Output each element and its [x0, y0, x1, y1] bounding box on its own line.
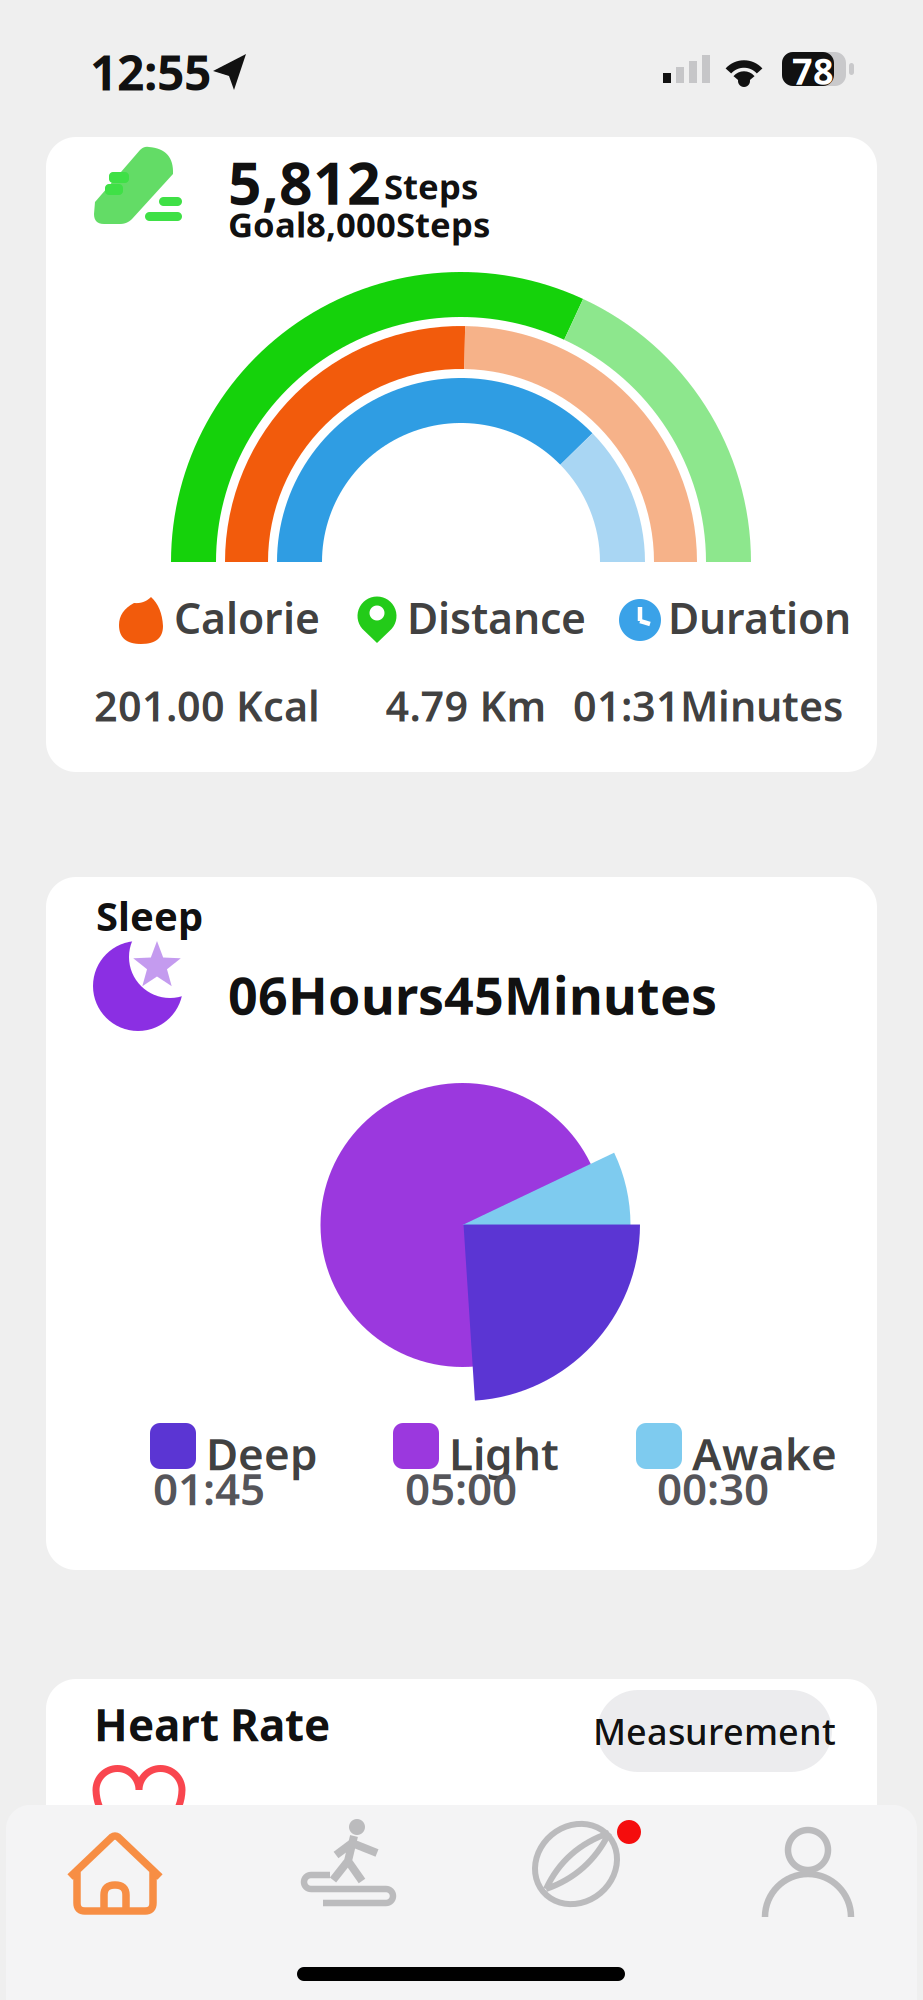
staticText: 01:45: [153, 1459, 265, 1517]
staticText: Measurement: [593, 1707, 836, 1755]
staticText: 4.79 Km: [385, 678, 546, 733]
button[interactable]: [0, 1805, 230, 1930]
staticText: 05:00: [405, 1459, 517, 1517]
button[interactable]: [230, 1805, 461, 1930]
staticText: Deep: [206, 1424, 318, 1482]
staticText: Distance: [407, 589, 586, 646]
staticText: Heart Rate: [94, 1695, 330, 1753]
staticText: Calorie: [174, 589, 320, 646]
staticText: 78: [792, 47, 834, 95]
button[interactable]: Measurement: [593, 1690, 836, 1772]
staticText: Goal8,000Steps: [228, 201, 490, 247]
staticText: 01:31Minutes: [573, 678, 843, 733]
button[interactable]: [461, 1805, 692, 1930]
staticText: Sleep: [96, 889, 203, 942]
staticText: 06Hours45Minutes: [228, 960, 717, 1029]
staticText: 12:55: [90, 40, 211, 104]
staticText: 5,812: [228, 143, 381, 221]
staticText: 00:30: [657, 1459, 769, 1517]
staticText: Duration: [668, 589, 851, 646]
button[interactable]: [692, 1805, 923, 1930]
staticText: Light: [449, 1424, 559, 1482]
staticText: 201.00 Kcal: [94, 678, 320, 733]
staticText: Awake: [692, 1424, 837, 1482]
staticText: Steps: [384, 163, 478, 209]
